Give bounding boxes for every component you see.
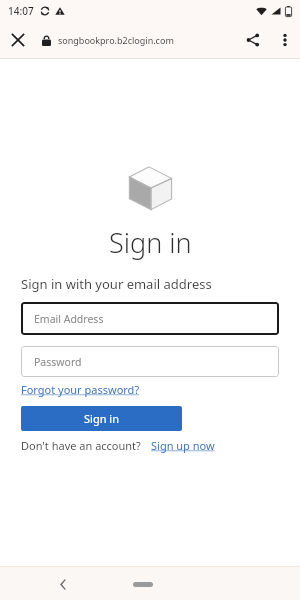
staticText: Sign in bbox=[84, 411, 119, 426]
button[interactable]: Sign up now bbox=[151, 438, 215, 453]
button[interactable]: Email Address bbox=[21, 302, 279, 335]
button[interactable]: Home bbox=[126, 571, 160, 597]
button[interactable]: Password bbox=[21, 346, 279, 377]
staticText: Email Address bbox=[34, 312, 104, 326]
button[interactable]: More options bbox=[270, 25, 300, 55]
button[interactable]: Close bbox=[0, 22, 36, 58]
staticText: Forgot your password? bbox=[21, 382, 140, 397]
button[interactable]: Back bbox=[48, 569, 78, 599]
staticText: Password bbox=[34, 355, 82, 369]
button[interactable]: Share bbox=[236, 23, 270, 57]
staticText: Sign in bbox=[109, 224, 192, 261]
staticText: 14:07 bbox=[8, 4, 34, 18]
staticText: Sign up now bbox=[151, 438, 215, 453]
staticText: Sign in with your email address bbox=[21, 275, 212, 293]
button[interactable]: Sign in bbox=[21, 406, 182, 431]
button[interactable]: Forgot your password? bbox=[21, 382, 140, 397]
staticText: Don't have an account? bbox=[21, 438, 141, 453]
staticText: songbookpro.b2clogin.com bbox=[58, 34, 174, 46]
